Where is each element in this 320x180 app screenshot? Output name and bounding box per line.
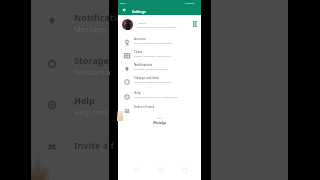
staticText: Message, group & call tones [134,67,168,70]
staticText: from [157,117,162,120]
button[interactable]: Back [119,5,129,15]
button[interactable]: Storage and data [118,74,201,87]
staticText: Message, [74,24,108,34]
staticText: Network usage, auto-download [134,80,171,83]
button[interactable]: Home [153,163,167,177]
button[interactable]: Account [118,35,201,48]
staticText: 1:23 PM [185,1,195,4]
button[interactable]: Notifications [31,11,109,37]
staticText: Theme, wallpapers, chat history [134,54,172,57]
staticText: Privacy, security, change number [134,41,173,44]
staticText: Storage and data [134,76,159,80]
staticText: Settings [132,9,146,14]
button[interactable]: Chats [118,48,201,61]
staticText: Chats [134,50,143,54]
staticText: Vol 1 [120,1,126,4]
staticText: WhatsApp [153,121,167,125]
button[interactable]: Storage [31,54,109,80]
staticText: Network u [74,67,111,77]
staticText: Notifications [74,11,133,23]
staticText: Help [134,91,141,95]
staticText: Help centre, contact us, privacy policy [134,95,179,98]
button[interactable]: Help [118,89,201,102]
staticText: Nimish [138,21,147,24]
staticText: Help cent [74,107,108,117]
button[interactable]: Nimish [118,16,201,32]
button[interactable]: QR code [189,18,199,28]
staticText: Hey there! I am using WhatsApp. [138,25,177,28]
staticText: Account [134,37,146,41]
button[interactable]: Invite a friend [118,103,201,116]
button[interactable]: Help [31,94,109,120]
staticText: Storage [74,54,109,66]
staticText: Invite a friend [134,105,155,109]
button[interactable]: Invite a f [31,139,109,165]
staticText: Help [74,94,95,106]
staticText: Invite a f [74,139,115,151]
staticText: Notifications [134,63,153,67]
button[interactable]: Recents [177,163,191,177]
button[interactable]: Notifications [118,61,201,74]
